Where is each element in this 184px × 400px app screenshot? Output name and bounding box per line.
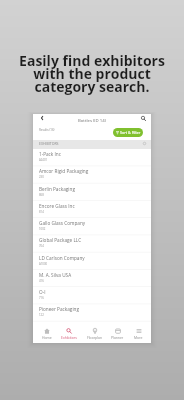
staticText: Amcor Rigid Packaging — [39, 168, 89, 174]
staticText: 704 — [39, 244, 44, 248]
staticText: 122 — [39, 313, 44, 317]
staticText: 868 — [39, 193, 44, 197]
button[interactable]: M. A. Silva USA — [33, 270, 151, 287]
staticText: 1-Pack Inc — [39, 151, 61, 157]
button[interactable]: Amcor Rigid Packaging — [33, 166, 151, 183]
button[interactable]: LD Carlson Company — [33, 253, 151, 270]
staticText: Planner — [111, 335, 124, 340]
button[interactable]: Gallo Glass Company — [33, 218, 151, 235]
button[interactable]: O-I — [33, 287, 151, 304]
staticText: 230 — [39, 175, 44, 179]
staticText: LD Carlson Company — [39, 255, 85, 261]
staticText: Sort & Filter — [120, 130, 141, 135]
staticText: Easily find exhibitors with the product … — [0, 51, 184, 97]
staticText: 716 — [39, 296, 44, 300]
button[interactable]: Planner — [110, 328, 125, 340]
staticText: 1002 — [39, 227, 46, 231]
button[interactable]: Berlin Packaging — [33, 184, 151, 201]
staticText: More — [134, 335, 143, 340]
button[interactable]: Home — [41, 328, 53, 340]
staticText: A2401 — [39, 158, 48, 162]
button[interactable]: Sort & Filter — [113, 128, 143, 137]
staticText: M. A. Silva USA — [39, 272, 72, 278]
staticText: O-I — [39, 289, 46, 295]
button[interactable]: Exhibitors — [60, 328, 78, 340]
button[interactable]: More — [133, 328, 144, 340]
staticText: A1000 — [39, 262, 48, 266]
staticText: Berlin Packaging — [39, 186, 75, 192]
button[interactable]: Encore Glass Inc — [33, 201, 151, 218]
staticText: Bottles (ID 14) — [78, 117, 106, 123]
button[interactable]: Global Package LLC — [33, 235, 151, 252]
staticText: Global Package LLC — [39, 237, 82, 243]
staticText: Home — [42, 335, 52, 340]
staticText: Gallo Glass Company — [39, 220, 86, 226]
staticText: Encore Glass Inc — [39, 203, 75, 209]
button[interactable]: Search — [139, 114, 148, 122]
staticText: 814 — [39, 210, 44, 214]
staticText: Results (16) — [39, 128, 55, 132]
button[interactable]: 1-Pack Inc — [33, 149, 151, 166]
button[interactable]: Pioneer Packaging — [33, 304, 151, 321]
staticText: Pioneer Packaging — [39, 306, 79, 312]
staticText: EXHIBITORS — [39, 141, 59, 146]
staticText: Exhibitors — [61, 335, 77, 340]
staticText: 416 — [39, 279, 44, 283]
button[interactable]: Floorplan — [86, 328, 103, 340]
button[interactable]: Back — [37, 114, 46, 122]
staticText: Floorplan — [87, 335, 102, 340]
